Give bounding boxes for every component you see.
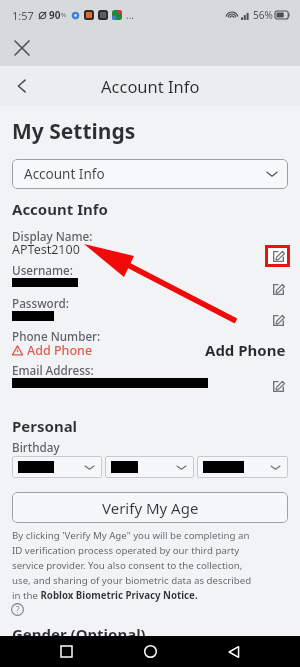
staticText: Gender (Optional) [12, 624, 146, 644]
staticText: Display Name: [12, 228, 93, 244]
staticText: APTest2100 [12, 241, 80, 258]
staticText: Username: [12, 262, 73, 278]
button[interactable]: Edit [272, 283, 285, 296]
staticText: % [61, 11, 66, 19]
button[interactable]: Verify My Age [12, 492, 288, 523]
button[interactable] [12, 456, 102, 478]
staticText: Email Address: [12, 362, 94, 378]
button[interactable]: Add Phone [12, 342, 93, 359]
staticText: Add Phone [205, 340, 286, 360]
button[interactable]: Edit [272, 314, 285, 327]
staticText: ? [16, 604, 20, 615]
button[interactable]: Help [11, 603, 24, 616]
staticText: Verify My Age [102, 498, 199, 518]
button[interactable]: Recents [48, 636, 84, 667]
staticText: Account Info [101, 75, 200, 97]
staticText: 90 [49, 8, 61, 22]
button[interactable]: Close [8, 34, 36, 62]
staticText: Personal [12, 416, 78, 436]
staticText: Add Phone [27, 342, 93, 359]
button[interactable]: Edit [272, 380, 285, 393]
staticText: My Settings [12, 117, 136, 146]
staticText: Account Info [12, 199, 108, 219]
staticText: Birthday [12, 439, 60, 455]
staticText: 1:57 [12, 8, 34, 23]
button[interactable]: Back [216, 636, 252, 667]
button[interactable]: Account Info [12, 159, 288, 189]
button[interactable]: Edit [272, 250, 285, 263]
button[interactable]: Back [8, 72, 36, 100]
button[interactable] [197, 456, 288, 478]
button[interactable] [105, 456, 194, 478]
staticText: By clicking 'Verify My Age" you will be … [12, 529, 294, 602]
staticText: ... [126, 8, 135, 22]
button[interactable]: Home [132, 636, 168, 667]
staticText: Account Info [24, 165, 105, 183]
staticText: Password: [12, 295, 69, 311]
staticText: 56% [253, 8, 273, 22]
staticText: Phone Number: [12, 328, 101, 344]
